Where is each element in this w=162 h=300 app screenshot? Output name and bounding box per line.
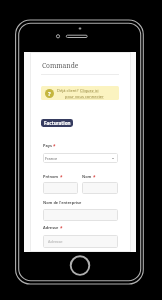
- staticText: Commande: [42, 61, 79, 70]
- staticText: pour vous connecter: [65, 94, 104, 99]
- staticText: *: [60, 174, 63, 180]
- staticText: *: [60, 225, 63, 231]
- button[interactable]: France: [43, 153, 118, 163]
- staticText: Déjà client?: [57, 88, 80, 93]
- button[interactable]: [43, 209, 118, 221]
- button[interactable]: [43, 182, 78, 194]
- staticText: *: [93, 174, 96, 180]
- staticText: Adresse: [43, 225, 59, 230]
- button[interactable]: Adresse: [43, 235, 118, 248]
- staticText: *: [53, 143, 56, 149]
- button[interactable]: Facturation: [41, 119, 73, 127]
- staticText: Cliquez ici: [80, 88, 99, 93]
- staticText: France: [45, 156, 58, 161]
- staticText: Nom de l'entreprise: [43, 200, 82, 205]
- staticText: ?: [48, 90, 51, 98]
- staticText: Facturation: [44, 120, 71, 126]
- staticText: Nom: [82, 174, 92, 179]
- staticText: Pays: [43, 143, 52, 148]
- button[interactable]: [82, 182, 118, 194]
- staticText: Adresse: [48, 239, 63, 244]
- staticText: Prénom: [43, 174, 59, 179]
- button[interactable]: ?: [41, 86, 119, 100]
